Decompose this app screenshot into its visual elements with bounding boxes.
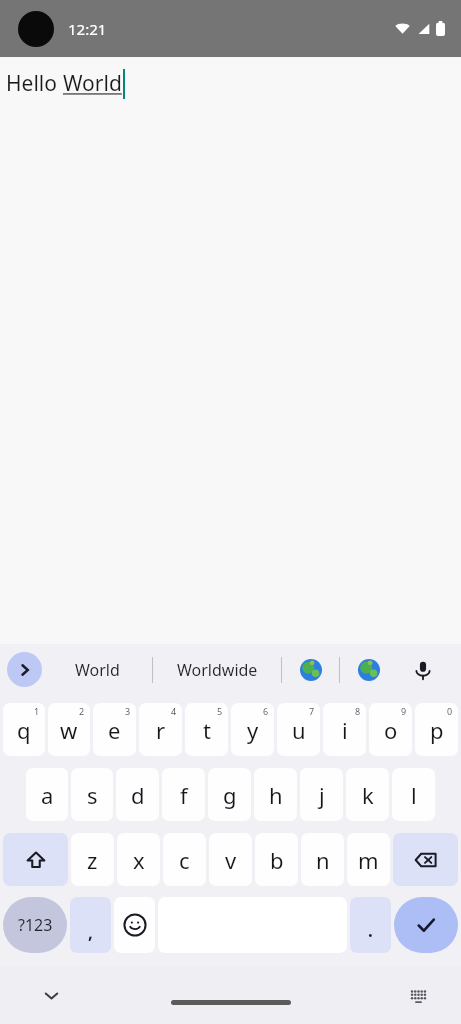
button[interactable]: Period xyxy=(350,897,391,953)
staticText: b xyxy=(270,845,284,875)
staticText: 6 xyxy=(263,705,269,717)
button[interactable]: Voice input xyxy=(397,644,449,695)
button[interactable]: s xyxy=(71,768,113,821)
staticText: World xyxy=(75,659,120,681)
staticText: g xyxy=(223,780,237,810)
button[interactable]: Comma xyxy=(70,897,111,953)
button[interactable]: j xyxy=(300,768,343,821)
staticText: r xyxy=(156,715,166,745)
button[interactable]: c xyxy=(163,833,206,886)
button[interactable]: r xyxy=(139,703,182,756)
staticText: Worldwide xyxy=(177,659,258,681)
staticText: ?123 xyxy=(18,914,53,936)
button[interactable]: Switch keyboard xyxy=(403,980,433,1010)
staticText: 12:21 xyxy=(68,19,107,39)
staticText: f xyxy=(180,780,188,810)
staticText: x xyxy=(133,845,145,875)
staticText: u xyxy=(292,715,306,745)
staticText: n xyxy=(316,845,330,875)
button[interactable]: b xyxy=(255,833,298,886)
button[interactable]: e xyxy=(93,703,136,756)
staticText: y xyxy=(247,715,259,745)
staticText: 7 xyxy=(309,705,315,717)
button[interactable]: k xyxy=(346,768,389,821)
staticText: q xyxy=(17,715,31,745)
button[interactable]: h xyxy=(254,768,297,821)
staticText: c xyxy=(179,845,190,875)
staticText: , xyxy=(88,921,93,944)
button[interactable]: q xyxy=(3,703,45,756)
staticText: l xyxy=(411,780,417,810)
button[interactable]: Shift xyxy=(3,833,68,886)
button[interactable]: t xyxy=(185,703,228,756)
button[interactable]: o xyxy=(369,703,412,756)
button[interactable]: m xyxy=(347,833,390,886)
staticText: p xyxy=(430,715,444,745)
button[interactable]: Expand suggestions xyxy=(7,652,42,687)
button[interactable]: z xyxy=(71,833,114,886)
button[interactable]: Hide keyboard xyxy=(34,978,68,1012)
staticText: e xyxy=(108,715,121,745)
staticText: 3 xyxy=(125,705,131,717)
button[interactable]: v xyxy=(209,833,252,886)
staticText: 8 xyxy=(355,705,361,717)
staticText: a xyxy=(41,780,54,810)
staticText: s xyxy=(87,780,98,810)
staticText: 0 xyxy=(447,705,453,717)
button[interactable]: x xyxy=(117,833,160,886)
button[interactable]: f xyxy=(162,768,205,821)
button[interactable]: w xyxy=(48,703,90,756)
staticText: 5 xyxy=(217,705,223,717)
button[interactable]: Worldwide xyxy=(153,644,281,695)
staticText: 4 xyxy=(171,705,177,717)
button[interactable]: Emoji xyxy=(114,897,155,953)
button[interactable]: l xyxy=(392,768,435,821)
button[interactable]: World xyxy=(42,644,152,695)
staticText: 2 xyxy=(79,705,85,717)
button[interactable]: i xyxy=(323,703,366,756)
staticText: j xyxy=(319,780,325,810)
button[interactable]: n xyxy=(301,833,344,886)
button[interactable]: a xyxy=(26,768,68,821)
staticText: 9 xyxy=(401,705,407,717)
button[interactable]: g xyxy=(208,768,251,821)
staticText: v xyxy=(225,845,237,875)
button[interactable]: Enter xyxy=(394,897,458,953)
staticText: w xyxy=(60,715,78,745)
staticText: t xyxy=(203,715,211,745)
button[interactable]: Backspace xyxy=(393,833,458,886)
staticText: d xyxy=(131,780,145,810)
button[interactable]: ?123 xyxy=(3,897,67,953)
staticText: m xyxy=(358,845,379,875)
staticText: i xyxy=(342,715,348,745)
staticText: World xyxy=(63,69,122,98)
staticText: h xyxy=(269,780,283,810)
staticText: Hello xyxy=(6,69,63,98)
button[interactable]: y xyxy=(231,703,274,756)
button[interactable]: Emoji globe xyxy=(282,644,339,695)
staticText: z xyxy=(87,845,98,875)
staticText: 1 xyxy=(34,705,40,717)
staticText: k xyxy=(362,780,374,810)
button[interactable]: u xyxy=(277,703,320,756)
button[interactable]: Emoji globe 2 xyxy=(340,644,397,695)
button[interactable]: d xyxy=(116,768,159,821)
staticText: . xyxy=(368,919,373,942)
button[interactable]: p xyxy=(415,703,458,756)
staticText: o xyxy=(384,715,398,745)
